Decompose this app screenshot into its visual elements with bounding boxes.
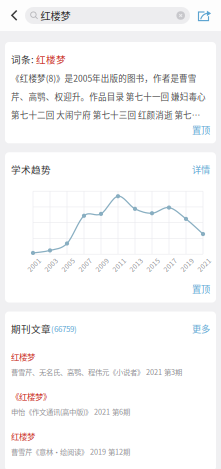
staticText: 2001 [26,260,42,270]
staticText: 置顶 [192,282,210,295]
staticText: 申怡《作文通讯(高中版)》 2021 第6期 [11,406,130,417]
staticText: 《红楼梦》 [11,390,51,402]
staticText: 曹雪芹《意林·绘阅读》 2019 第12期 [11,446,130,457]
staticText: 2009 [94,260,110,270]
staticText: 2003 [43,260,59,270]
staticText: 曹雪芹、无名氏、高鹗、程伟元《小说者》 2021 第3期 [11,367,182,377]
button[interactable]: 置顶 [192,282,210,295]
staticText: 2021 [196,260,212,270]
button[interactable]: 置顶 [192,123,210,136]
staticText: 词条: [11,52,34,66]
staticText: 红楼梦 [11,350,35,363]
button[interactable]: 红楼梦 [11,350,210,384]
staticText: (66759) [51,323,77,334]
staticText: 红楼梦 [38,8,70,23]
button[interactable]: 红楼梦 [11,424,210,464]
button[interactable]: Share [190,0,219,30]
staticText: 2019 [179,260,195,270]
button[interactable]: 《红楼梦》 [11,384,210,424]
staticText: 2017 [162,260,178,270]
staticText: 更多 [192,322,210,335]
staticText: 2013 [128,260,144,270]
staticText: 2015 [145,260,161,270]
staticText: 红楼梦 [11,430,35,442]
button[interactable]: Back [4,0,25,30]
staticText: 红楼梦 [36,52,66,66]
staticText: 《红楼梦(8)》是2005年出版的图书，作者是曹雪芹、高鹗、权迎升。作品目录 第… [11,72,206,121]
staticText: 置顶 [192,123,210,136]
staticText: 2005 [60,260,76,270]
staticText: 学术趋势 [11,162,51,176]
staticText: 期刊文章 [11,321,51,335]
button[interactable]: 详情 [192,163,210,176]
staticText: 详情 [192,163,210,176]
staticText: 2007 [77,260,93,270]
staticText: 2011 [111,260,127,270]
button[interactable]: 更多 [192,322,210,335]
